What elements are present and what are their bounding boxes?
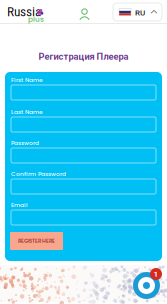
staticText: Регистрация Плеера bbox=[38, 51, 128, 62]
staticText: REGISTER HERE bbox=[18, 237, 55, 245]
staticText: Last Name bbox=[11, 108, 43, 116]
button[interactable]: Chat bbox=[133, 272, 160, 299]
button[interactable]: REGISTER HERE bbox=[10, 232, 63, 250]
staticText: 1 bbox=[153, 269, 158, 279]
staticText: Email bbox=[11, 201, 28, 209]
staticText: RU bbox=[135, 8, 145, 17]
button[interactable]: RU bbox=[113, 3, 162, 21]
staticText: Password bbox=[11, 139, 39, 147]
staticText: plus bbox=[28, 14, 44, 24]
button[interactable]: Account bbox=[79, 8, 90, 20]
staticText: First Name bbox=[11, 76, 43, 84]
staticText: Russia bbox=[7, 4, 41, 20]
staticText: Confirm Password bbox=[11, 170, 66, 178]
